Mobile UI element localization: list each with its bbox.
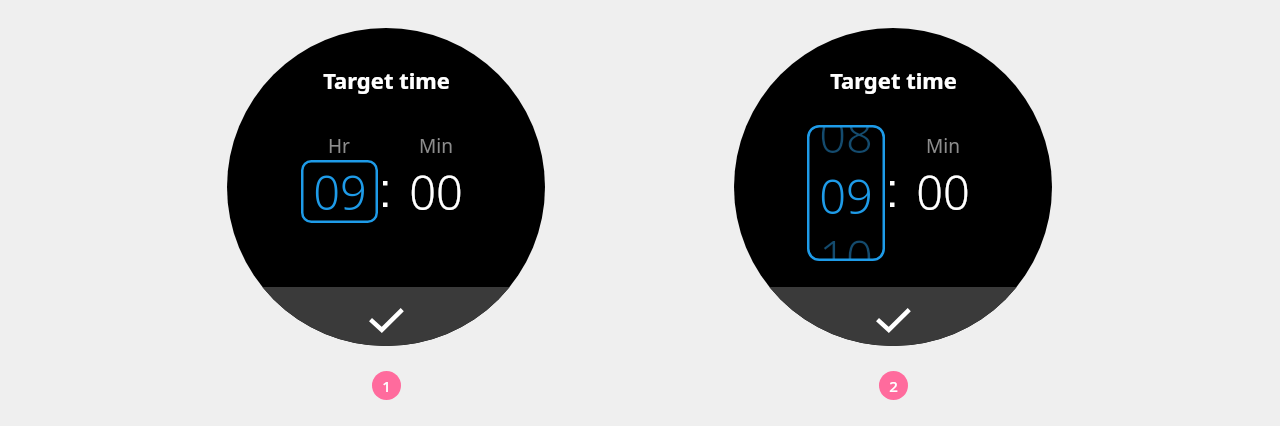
button[interactable]: Minutes 00 [898,160,988,223]
staticText: 2 [889,376,898,396]
button[interactable]: Hour 09 [301,160,378,223]
staticText: Hr [328,133,350,159]
staticText: Target time [323,65,450,95]
button[interactable]: Hour picker, 09 selected [807,125,885,261]
staticText: 09 [819,164,873,222]
button[interactable]: Step 2 [879,371,908,400]
staticText: 1 [382,376,391,396]
staticText: 00 [409,160,463,223]
button[interactable]: Minutes 00 [391,160,481,223]
staticText: 09 [313,160,367,223]
staticText: Min [419,133,453,159]
staticText: Target time [830,65,957,95]
staticText: 10 [819,225,873,261]
button[interactable]: Confirm [734,287,1052,346]
staticText: 08 [819,125,873,161]
button[interactable]: Step 1 [372,371,401,400]
button[interactable]: Confirm [227,287,545,346]
staticText: Min [926,133,960,159]
staticText: 00 [916,160,970,223]
